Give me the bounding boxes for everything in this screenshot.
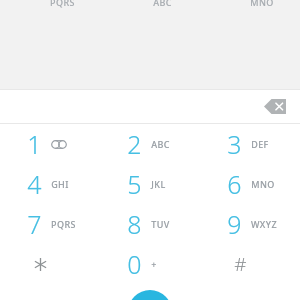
staticText: 8 [127, 207, 142, 241]
button[interactable]: 9 [200, 204, 300, 244]
button[interactable]: 6 [200, 164, 300, 204]
staticText: JKL [151, 178, 166, 190]
staticText: ABC [151, 138, 170, 150]
staticText: PQRS [50, 0, 75, 8]
staticText: WXYZ [251, 218, 277, 230]
button[interactable]: 2 [100, 124, 200, 164]
staticText: # [234, 251, 247, 277]
staticText: 4 [27, 167, 42, 201]
staticText: 2 [127, 127, 142, 161]
button[interactable] [0, 244, 100, 284]
button[interactable]: 0 [100, 244, 200, 284]
button[interactable]: 8 [100, 204, 200, 244]
button[interactable]: 5 [100, 164, 200, 204]
staticText: TUV [151, 218, 170, 230]
staticText: MNO [250, 0, 274, 8]
staticText: GHI [51, 178, 69, 190]
staticText: PQRS [51, 218, 76, 230]
button[interactable]: 4 [0, 164, 100, 204]
staticText: 1 [27, 127, 42, 161]
button[interactable]: # [200, 244, 300, 284]
staticText: MNO [251, 178, 275, 190]
staticText: ABC [153, 0, 172, 8]
staticText: 6 [227, 167, 242, 201]
staticText: 9 [227, 207, 242, 241]
button[interactable]: Backspace [258, 90, 292, 123]
button[interactable]: 3 [200, 124, 300, 164]
staticText: 5 [127, 167, 142, 201]
button[interactable]: 1 [0, 124, 100, 164]
staticText: 0 [127, 247, 142, 281]
staticText: + [151, 258, 157, 270]
staticText: 3 [227, 127, 242, 161]
button[interactable]: 7 [0, 204, 100, 244]
button[interactable]: Call [128, 290, 172, 300]
staticText: DEF [251, 138, 269, 150]
staticText: 7 [27, 207, 42, 241]
